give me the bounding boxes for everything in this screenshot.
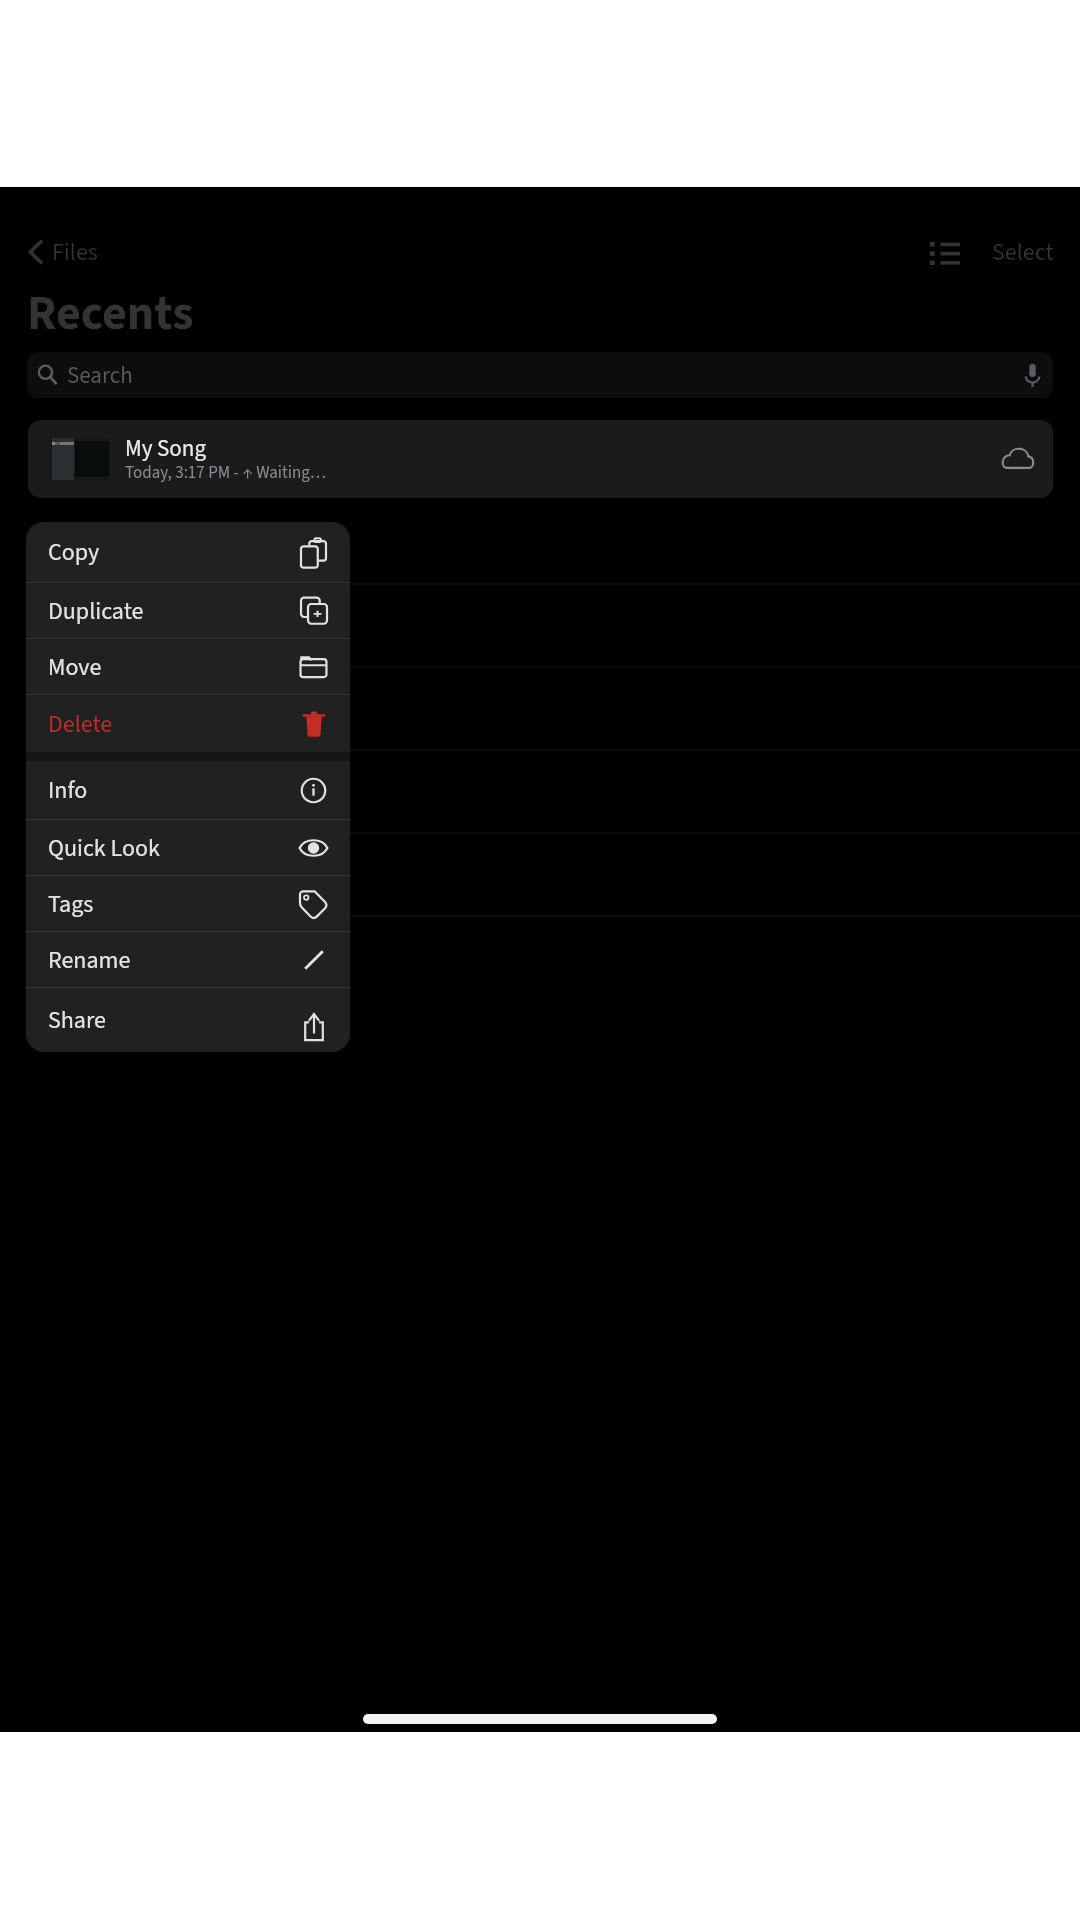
button[interactable]: Duplicate [26, 583, 350, 638]
staticText: Files [52, 235, 98, 269]
staticText: Recents [27, 280, 194, 348]
staticText: Rename [48, 943, 131, 977]
button[interactable]: Rename [26, 932, 350, 987]
staticText: Move [48, 650, 102, 684]
staticText: Select [992, 235, 1054, 269]
staticText: Duplicate [48, 594, 144, 628]
staticText: Copy [48, 535, 100, 569]
button[interactable]: List view [914, 228, 972, 277]
button[interactable]: Voice search [1024, 363, 1053, 388]
staticText: Quick Look [48, 831, 160, 865]
staticText: Delete [48, 707, 113, 741]
button[interactable]: Copy [26, 522, 350, 582]
staticText: Share [48, 1003, 106, 1037]
button[interactable]: Delete [26, 695, 350, 752]
button[interactable]: Select [972, 223, 1080, 281]
staticText: Search [67, 359, 133, 392]
button[interactable]: Waiting to upload [1002, 448, 1034, 471]
button[interactable]: Share [26, 988, 350, 1052]
staticText: Info [48, 773, 88, 807]
button[interactable]: Move [26, 639, 350, 694]
button[interactable]: Info [26, 761, 350, 819]
button[interactable]: Files [0, 225, 114, 279]
button[interactable]: Search [27, 352, 1053, 398]
staticText: My Song [125, 432, 206, 465]
staticText: Today, 3:17 PM - ↑ Waiting… [125, 461, 326, 485]
button[interactable]: Quick Look [26, 820, 350, 875]
button[interactable]: Tags [26, 876, 350, 931]
button[interactable]: My Song [28, 420, 1053, 498]
staticText: Tags [48, 887, 94, 921]
